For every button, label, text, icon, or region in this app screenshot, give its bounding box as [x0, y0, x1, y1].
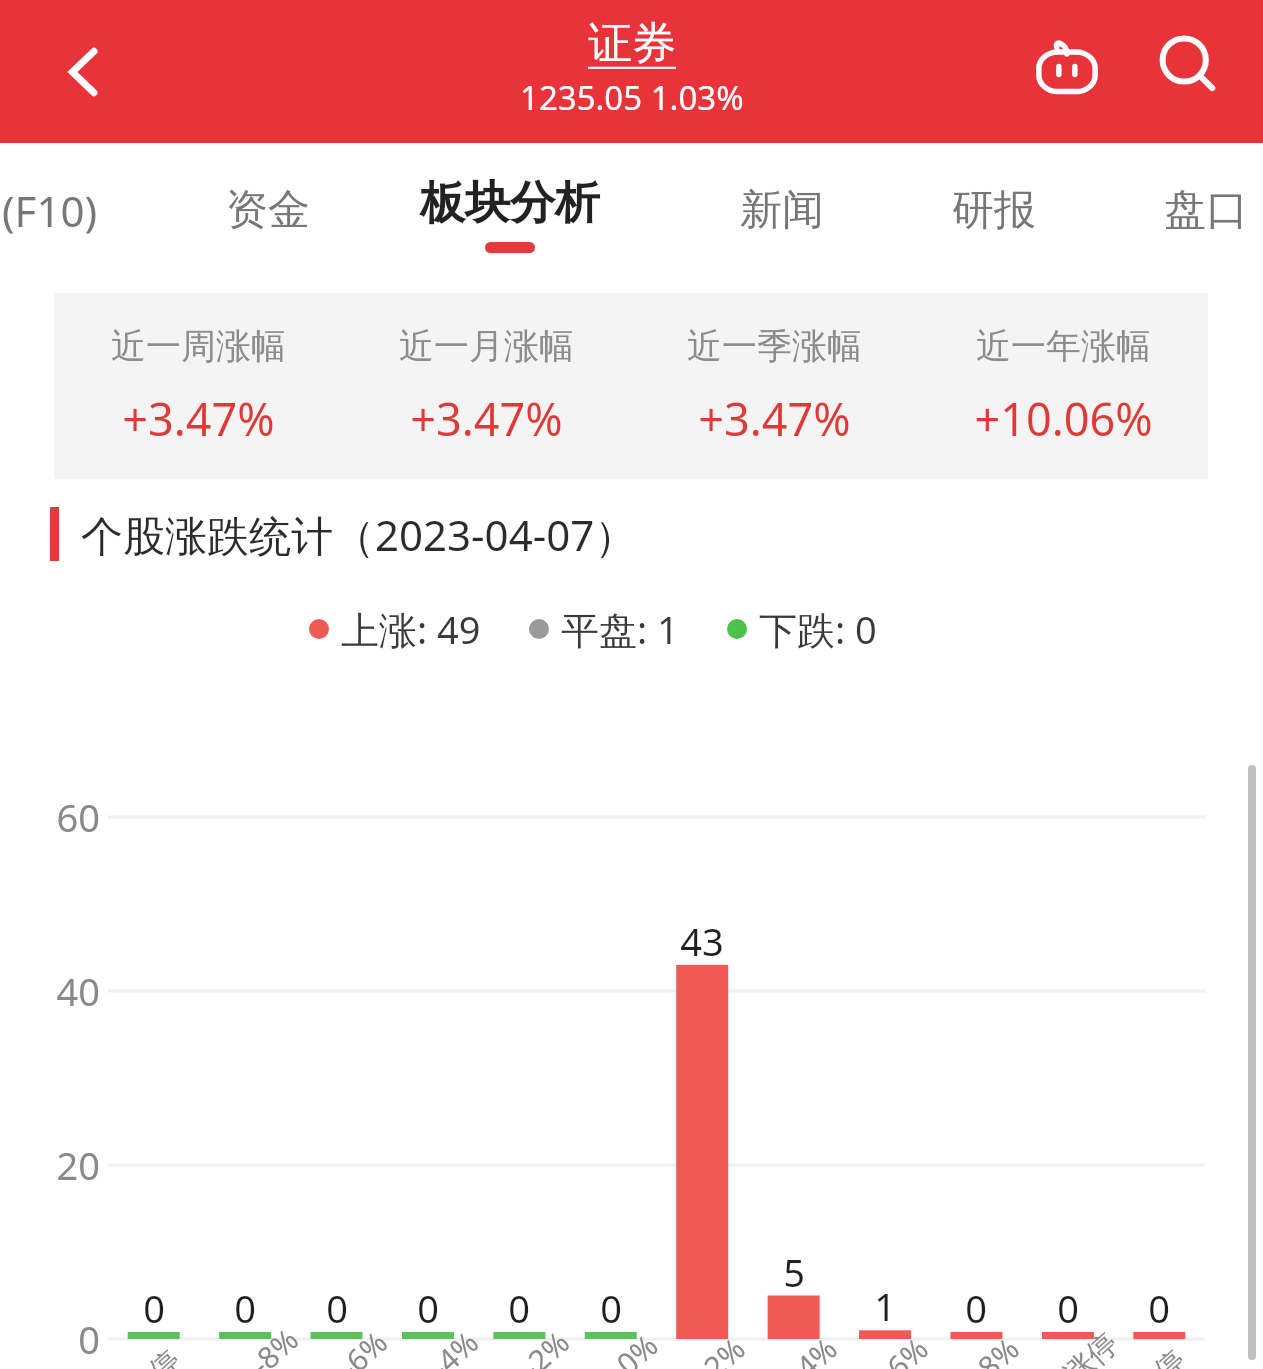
staticText: 20	[30, 1139, 100, 1191]
staticText: 60	[30, 791, 100, 843]
staticText: 43	[657, 915, 747, 967]
button[interactable]: 研报	[942, 170, 1046, 251]
staticText: +10.06%	[974, 388, 1153, 449]
staticText: 个股涨跌统计（2023-04-07）	[81, 506, 637, 563]
staticText: 近一季涨幅	[687, 324, 862, 368]
staticText: -2%~0%	[515, 1289, 706, 1369]
staticText: 40	[30, 965, 100, 1017]
button[interactable]: 新闻	[730, 170, 834, 251]
staticText: -4%~-2%	[423, 1289, 614, 1369]
staticText: 2%~4%	[698, 1289, 889, 1369]
staticText: 0	[292, 1282, 382, 1334]
staticText: 0	[474, 1282, 564, 1334]
button[interactable]: 板块分析	[410, 167, 610, 261]
button[interactable]: 资金	[216, 170, 320, 251]
staticText: 研报	[952, 184, 1036, 237]
staticText: 5	[749, 1246, 839, 1298]
staticText: 近一周涨幅	[111, 324, 286, 368]
staticText: 0%~2%	[606, 1289, 797, 1369]
staticText: 上涨: 49	[341, 603, 481, 655]
staticText: -6%~-4%	[332, 1289, 523, 1369]
staticText: -8%~-6%	[241, 1289, 432, 1369]
staticText: 1235.05 1.03%	[520, 75, 744, 120]
button[interactable]: 盘口	[1154, 170, 1258, 251]
button[interactable]: 近一月涨幅	[342, 324, 630, 449]
staticText: 0	[30, 1313, 100, 1365]
staticText: 跌停~-8%	[149, 1289, 340, 1369]
staticText: 平盘: 1	[561, 603, 679, 655]
staticText: 8%~涨停	[972, 1289, 1163, 1369]
staticText: 盘口	[1164, 184, 1248, 237]
staticText: 0	[200, 1282, 290, 1334]
button[interactable]: Back	[40, 27, 130, 117]
button[interactable]: AI assistant	[1021, 20, 1113, 112]
staticText: 1	[840, 1280, 930, 1332]
button[interactable]: 近一周涨幅	[54, 324, 342, 449]
staticText: 资金	[226, 184, 310, 237]
button[interactable]: 近一季涨幅	[630, 324, 919, 449]
staticText: (F10)	[2, 182, 98, 239]
staticText: 0	[931, 1282, 1021, 1334]
button[interactable]: Search	[1143, 20, 1235, 112]
staticText: 下跌: 0	[759, 603, 877, 655]
staticText: 0	[109, 1282, 199, 1334]
staticText: 新闻	[740, 184, 824, 237]
staticText: 证券	[588, 16, 676, 71]
staticText: 跌停	[59, 1288, 248, 1369]
staticText: +3.47%	[698, 388, 851, 449]
staticText: 0	[566, 1282, 656, 1334]
staticText: 涨停	[1064, 1288, 1253, 1369]
staticText: 板块分析	[420, 175, 600, 232]
staticText: +3.47%	[122, 388, 275, 449]
staticText: 6%~8%	[880, 1289, 1071, 1369]
staticText: 0	[1023, 1282, 1113, 1334]
staticText: 近一月涨幅	[399, 324, 574, 368]
staticText: 0	[383, 1282, 473, 1334]
staticText: 4%~6%	[789, 1289, 980, 1369]
staticText: 近一年涨幅	[976, 324, 1151, 368]
button[interactable]: (F10)	[0, 168, 108, 253]
staticText: 0	[1114, 1282, 1204, 1334]
staticText: +3.47%	[410, 388, 563, 449]
button[interactable]: 近一年涨幅	[919, 324, 1208, 449]
